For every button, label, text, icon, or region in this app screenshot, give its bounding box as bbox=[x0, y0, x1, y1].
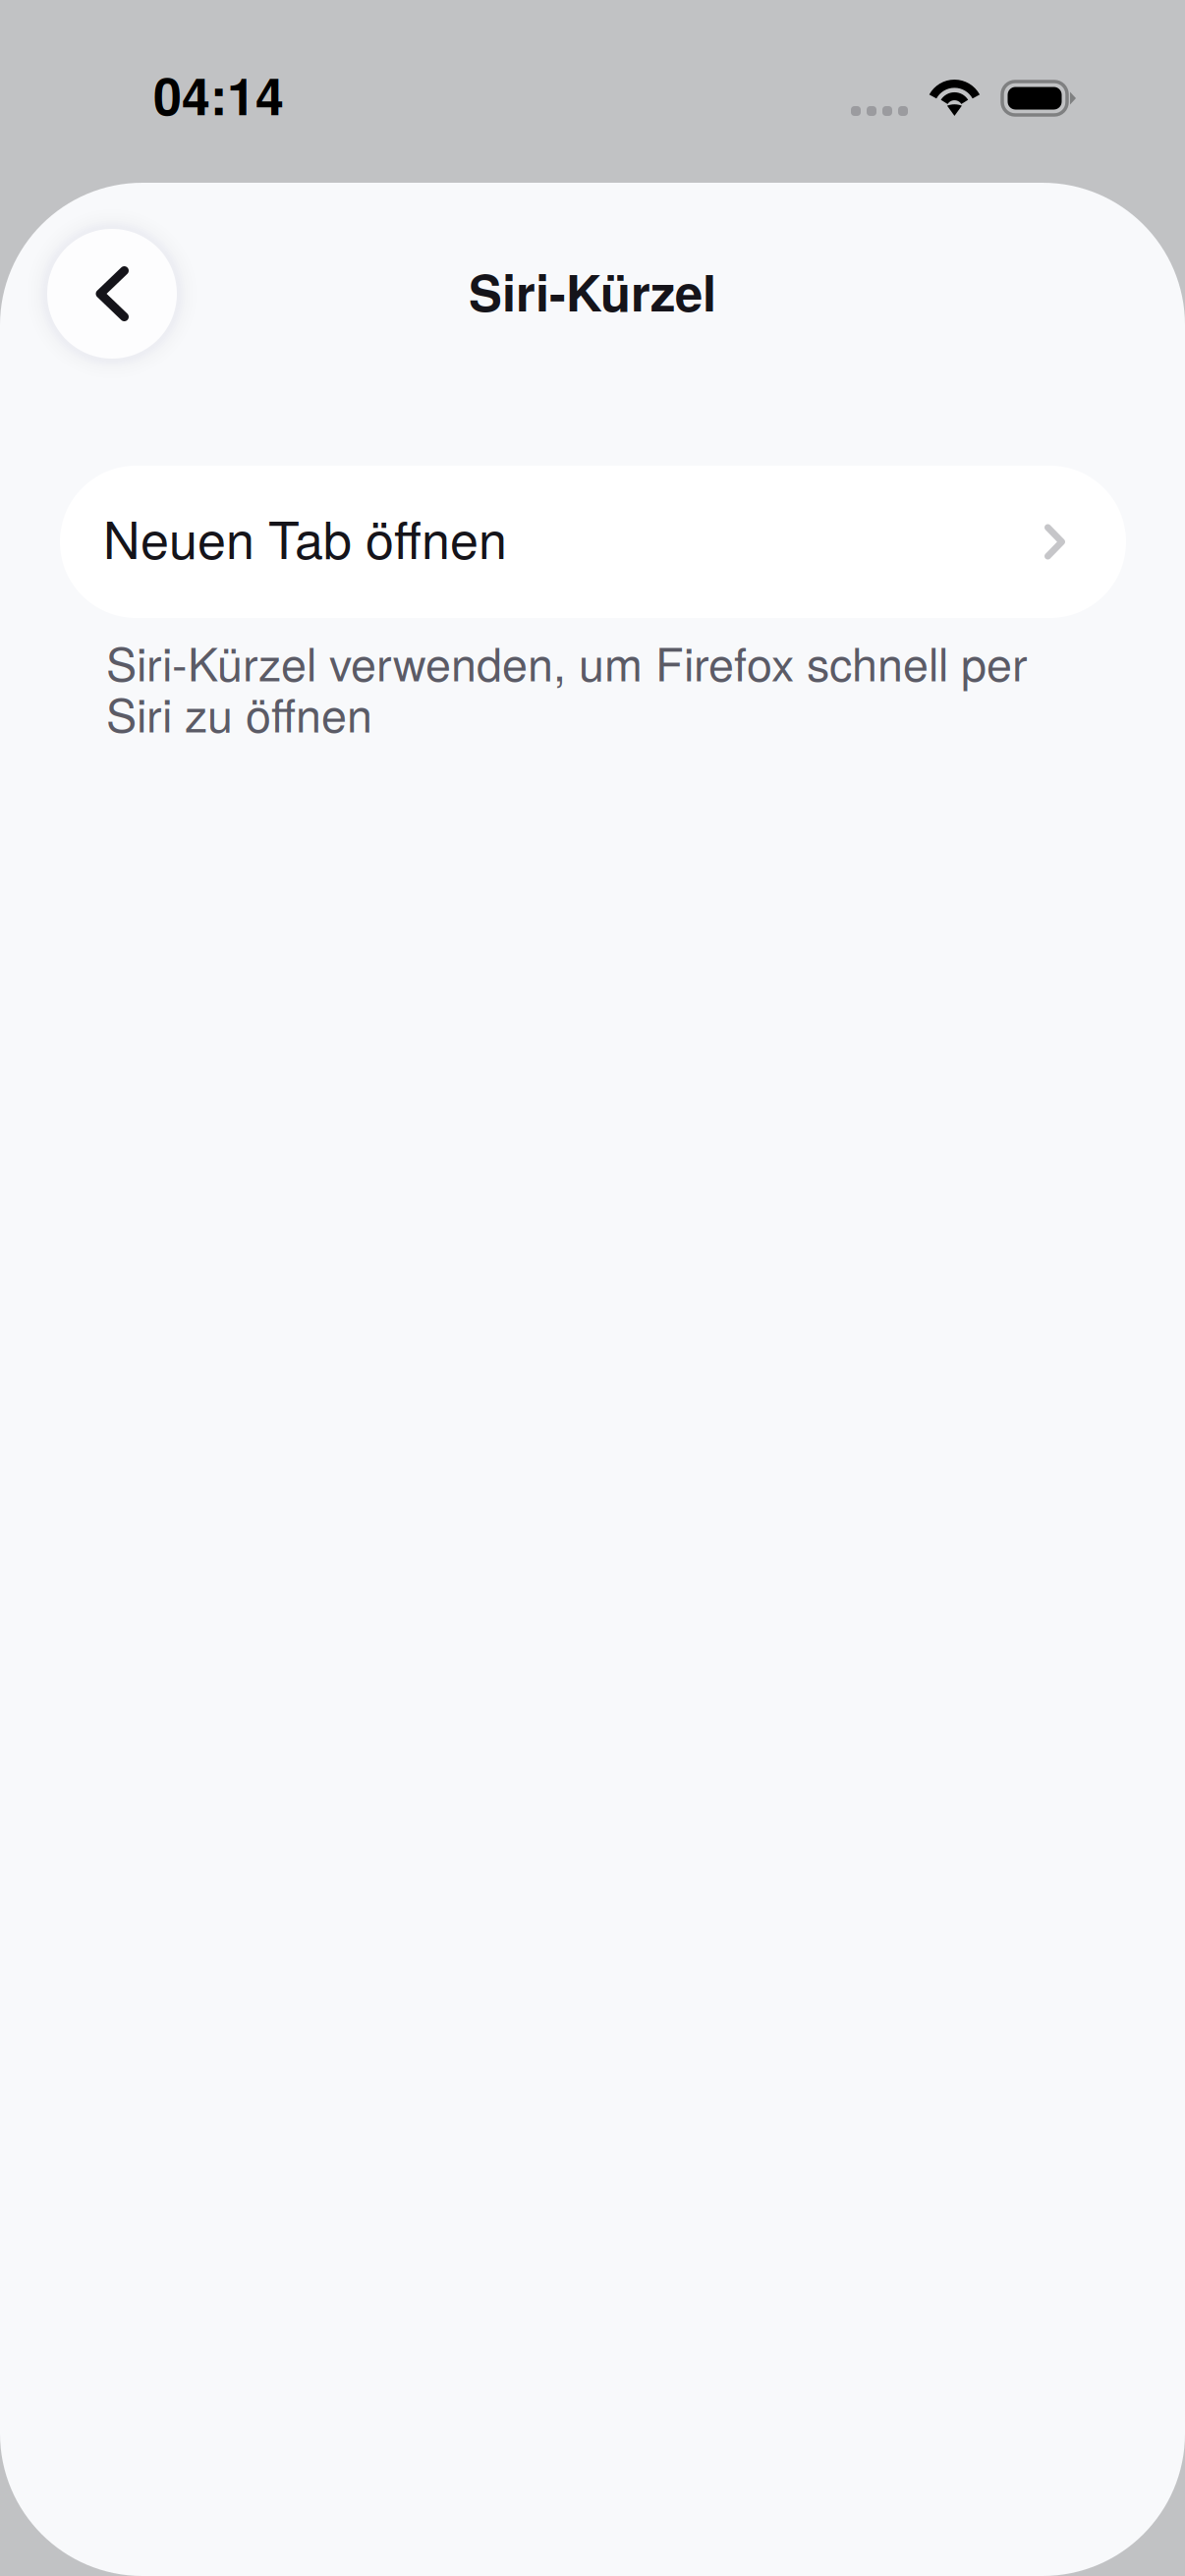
button[interactable]: Neuen Tab öffnen bbox=[60, 466, 1126, 618]
staticText: Siri zu öffnen bbox=[106, 680, 372, 745]
staticText: Siri-Kürzel bbox=[469, 255, 716, 327]
staticText: Neuen Tab öffnen bbox=[103, 500, 507, 574]
staticText: Siri-Kürzel verwenden, um Firefox schnel… bbox=[106, 629, 1028, 694]
button[interactable]: Zurück bbox=[47, 229, 177, 359]
staticText: 04:14 bbox=[153, 58, 284, 131]
